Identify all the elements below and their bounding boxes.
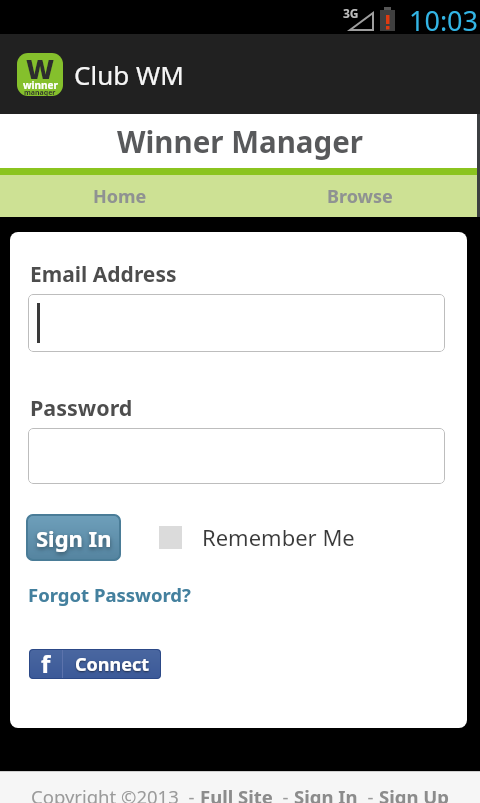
button[interactable]: Sign Up xyxy=(379,784,449,803)
staticText: Browse xyxy=(327,184,393,209)
staticText: W xyxy=(26,53,55,87)
staticText: Remember Me xyxy=(202,522,355,552)
staticText: Copyright ©2013 - xyxy=(31,784,200,803)
button[interactable]: Remember Me xyxy=(159,522,355,552)
button[interactable]: Sign In xyxy=(294,784,358,803)
staticText: Password xyxy=(30,393,133,422)
button[interactable]: Home xyxy=(0,175,240,217)
staticText: winner xyxy=(23,78,58,92)
button[interactable]: Browse xyxy=(240,175,480,217)
button[interactable]: f xyxy=(29,649,161,679)
staticText: Winner Manager xyxy=(117,121,363,161)
staticText: Sign In xyxy=(36,523,112,553)
staticText: f xyxy=(41,649,51,677)
staticText: 10:03 xyxy=(409,2,479,36)
button[interactable]: Full Site xyxy=(200,784,273,803)
staticText: manager xyxy=(24,88,56,96)
staticText: Club WM xyxy=(74,57,184,92)
button[interactable] xyxy=(28,428,445,484)
staticText: Home xyxy=(93,184,147,209)
staticText: 3G xyxy=(343,5,359,21)
staticText: - xyxy=(358,784,379,803)
button[interactable] xyxy=(28,294,445,352)
staticText: Connect xyxy=(75,652,150,677)
staticText: - xyxy=(273,784,294,803)
button[interactable]: Sign In xyxy=(26,514,121,561)
staticText: Email Address xyxy=(30,260,177,289)
button[interactable]: Forgot Password? xyxy=(28,582,191,607)
